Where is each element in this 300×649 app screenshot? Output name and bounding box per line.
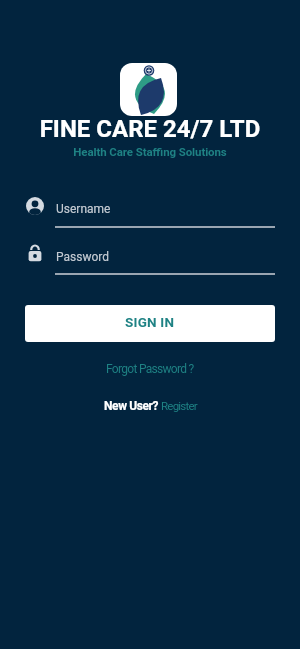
- staticText: FINE CARE 24/7 LTD: [0, 115, 300, 143]
- staticText: New User?: [104, 399, 159, 413]
- button[interactable]: Register: [159, 399, 197, 412]
- button[interactable]: SIGN IN: [25, 305, 275, 342]
- button[interactable]: Forgot Password ?: [106, 362, 194, 376]
- staticText: SIGN IN: [125, 314, 175, 330]
- staticText: Password: [56, 250, 110, 264]
- staticText: Username: [56, 202, 111, 216]
- staticText: Health Care Staffing Solutions: [0, 145, 300, 158]
